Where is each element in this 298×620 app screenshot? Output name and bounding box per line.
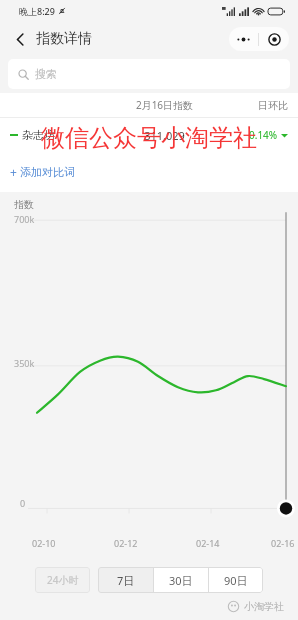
button[interactable]: 30日 — [154, 567, 208, 593]
staticText: 700k — [14, 213, 35, 225]
staticText: 311,029 — [113, 128, 216, 143]
staticText: 90日 — [224, 573, 248, 588]
button[interactable]: Back — [5, 24, 35, 54]
staticText: 杂志坊 — [22, 128, 55, 142]
staticText: 指数详情 — [36, 30, 92, 48]
staticText: 02-16 — [271, 537, 295, 549]
staticText: 0 — [20, 497, 26, 509]
staticText: 搜索 — [35, 67, 57, 81]
staticText: 指数 — [14, 198, 34, 211]
button[interactable]: + — [10, 164, 75, 180]
button[interactable]: 90日 — [209, 567, 263, 593]
button[interactable]: 杂志坊 — [10, 118, 288, 152]
staticText: 350k — [14, 357, 35, 369]
staticText: 7日 — [117, 573, 135, 588]
staticText: 02-10 — [32, 537, 56, 549]
button[interactable]: Menu and Close — [229, 27, 289, 51]
staticText: 添加对比词 — [20, 165, 75, 179]
staticText: 微信公众号小淘学社 — [41, 123, 257, 153]
staticText: 小淘学社 — [244, 600, 284, 613]
button[interactable]: 7日 — [98, 567, 153, 593]
staticText: 2月16日指数 — [113, 98, 216, 112]
staticText: 晚上8:29 — [19, 5, 55, 17]
staticText: 日环比 — [216, 99, 288, 112]
staticText: + — [10, 164, 17, 180]
button[interactable]: 搜索 — [8, 59, 290, 89]
staticText: 0.14% — [249, 128, 278, 142]
button[interactable]: 24小时 — [35, 567, 90, 593]
staticText: 02-14 — [196, 537, 220, 549]
staticText: 30日 — [169, 573, 193, 588]
staticText: 02-12 — [114, 537, 138, 549]
staticText: 24小时 — [47, 573, 79, 587]
